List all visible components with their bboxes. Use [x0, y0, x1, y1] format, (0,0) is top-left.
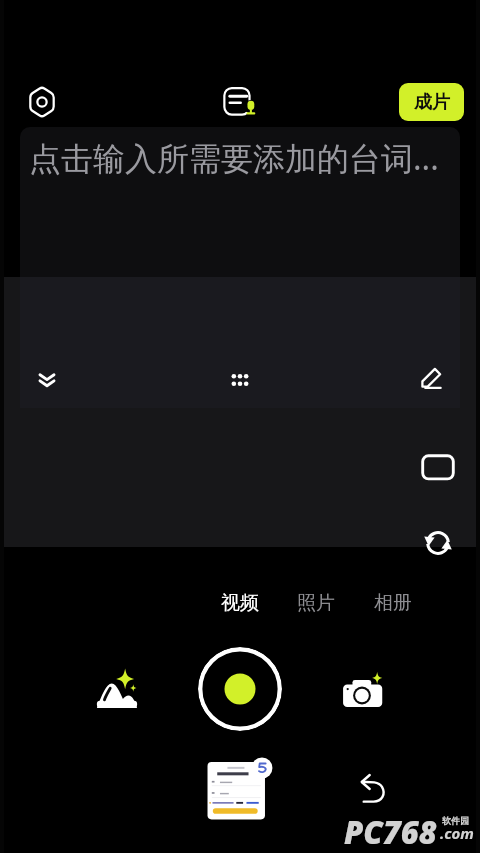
button[interactable]: 成片	[399, 83, 464, 121]
button[interactable]: 视频	[214, 586, 266, 620]
button[interactable]: Edit	[412, 359, 452, 399]
button[interactable]: Script	[218, 80, 262, 124]
staticText: PC768	[344, 811, 437, 853]
staticText: 照片	[297, 591, 335, 615]
button[interactable]: Last clip	[205, 755, 273, 821]
button[interactable]: Collapse	[27, 360, 67, 400]
staticText: 点击输入所需要添加的台词...	[29, 136, 439, 180]
button[interactable]: Settings	[20, 80, 64, 124]
button[interactable]: 照片	[290, 586, 342, 620]
staticText: 成片	[414, 91, 450, 114]
button[interactable]: 相册	[367, 586, 419, 620]
button[interactable]: Photo mode	[334, 663, 390, 719]
button[interactable]: Switch camera	[416, 521, 460, 565]
button[interactable]: Undo	[351, 766, 395, 810]
staticText: .com	[440, 823, 474, 843]
button[interactable]: Keyboard	[220, 360, 260, 400]
button[interactable]: Aspect ratio	[416, 446, 460, 490]
staticText: 软件园	[442, 815, 469, 826]
button[interactable]: Effects	[89, 663, 145, 719]
staticText: 视频	[221, 591, 259, 615]
button[interactable]: 点击输入所需要添加的台词...	[20, 127, 460, 277]
button[interactable]: Record	[198, 647, 282, 731]
staticText: 相册	[374, 591, 412, 615]
